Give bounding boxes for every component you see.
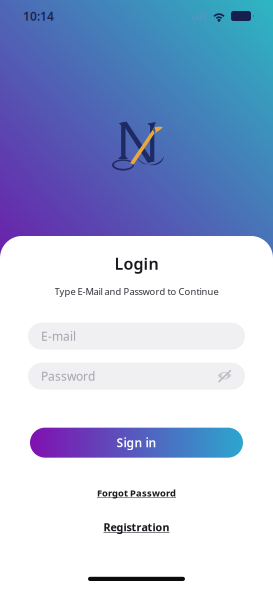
button[interactable]: Registration <box>95 517 177 537</box>
staticText: Registration <box>103 520 169 534</box>
button[interactable]: Password <box>28 363 245 390</box>
staticText: Password <box>41 368 95 384</box>
button[interactable]: E-mail <box>28 323 245 350</box>
button[interactable]: Sign in <box>30 428 243 458</box>
staticText: Type E-Mail and Password to Continue <box>54 285 218 298</box>
staticText: Forgot Password <box>97 487 176 499</box>
staticText: E-mail <box>41 328 76 344</box>
staticText: 10:14 <box>23 8 54 24</box>
button[interactable]: Forgot Password <box>89 484 184 502</box>
staticText: Login <box>114 253 158 274</box>
staticText: Sign in <box>116 435 156 451</box>
